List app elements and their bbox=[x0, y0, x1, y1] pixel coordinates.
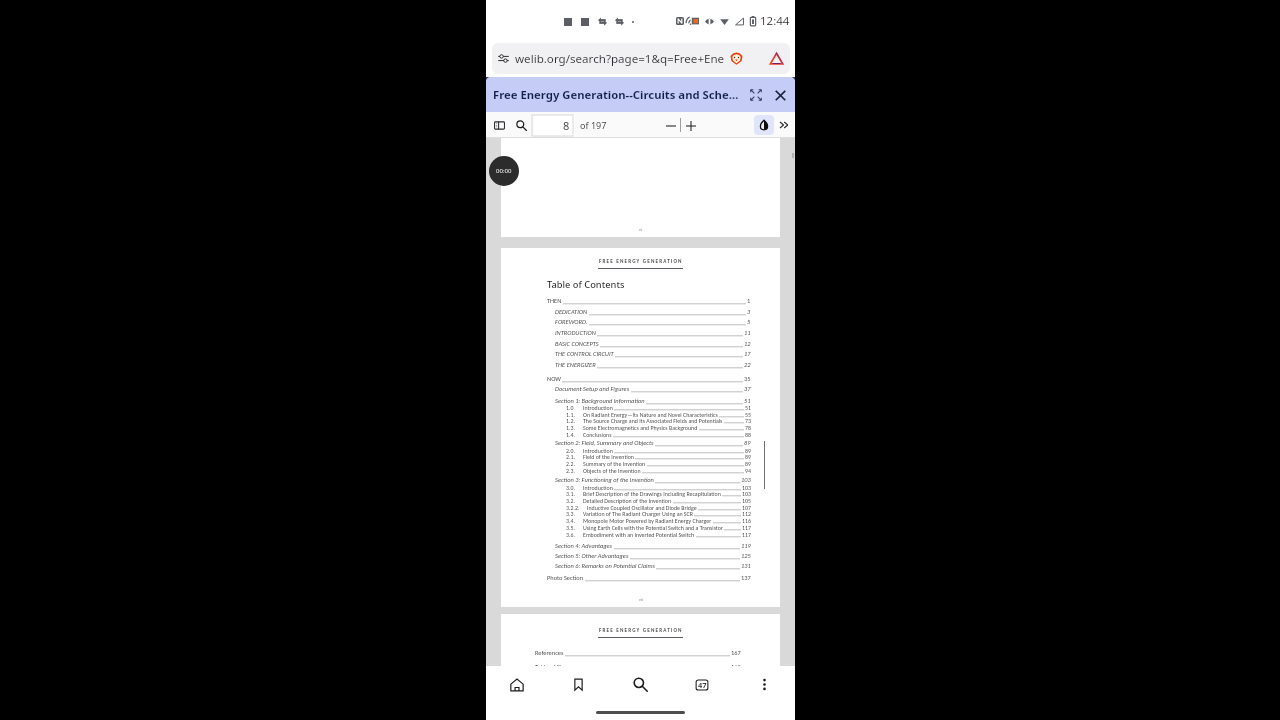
button[interactable]: Contrast bbox=[754, 115, 774, 135]
staticText: On Radiant Energy—Its Nature and Novel C… bbox=[583, 411, 718, 418]
staticText: 55 bbox=[745, 411, 751, 418]
staticText: 112 bbox=[742, 510, 751, 517]
staticText: 3 bbox=[747, 308, 751, 316]
staticText: Detailed Description of the Invention bbox=[583, 497, 672, 504]
staticText: 47 bbox=[698, 680, 707, 690]
button[interactable]: 8 bbox=[534, 115, 575, 136]
staticText: Summary of the Invention bbox=[583, 460, 646, 467]
staticText: 116 bbox=[742, 517, 751, 524]
staticText: Section 3: Functioning of the Invention bbox=[555, 476, 654, 484]
staticText: Monopole Motor Powered by Radiant Energy… bbox=[583, 517, 712, 524]
staticText: 137 bbox=[741, 574, 751, 582]
staticText: Document Setup and Figures bbox=[555, 385, 630, 393]
staticText: 51 bbox=[744, 397, 751, 405]
staticText: Variation of The Radiant Charger Using a… bbox=[583, 510, 693, 517]
button[interactable]: Full screen bbox=[745, 84, 767, 106]
staticText: Field of the Invention bbox=[583, 453, 634, 460]
staticText: 103 bbox=[742, 490, 751, 497]
staticText: FREE ENERGY GENERATION bbox=[599, 627, 683, 633]
staticText: 103 bbox=[742, 484, 751, 491]
staticText: 3.1. bbox=[566, 490, 575, 497]
staticText: THEN bbox=[547, 297, 562, 305]
staticText: 89 bbox=[745, 447, 751, 454]
staticText: 37 bbox=[744, 385, 751, 393]
staticText: NOW bbox=[547, 375, 561, 383]
staticText: Brief Description of the Drawings Includ… bbox=[583, 490, 721, 497]
staticText: BASIC CONCEPTS bbox=[555, 340, 599, 348]
staticText: 17 bbox=[744, 350, 751, 358]
staticText: welib.org/search?page=1&q=Free+Ene bbox=[515, 51, 725, 67]
staticText: FOREWORD. bbox=[555, 318, 588, 326]
staticText: Section 2: Field, Summary and Objects bbox=[555, 439, 654, 447]
staticText: 8 bbox=[563, 118, 570, 133]
staticText: 22 bbox=[744, 361, 751, 369]
staticText: 3.5. bbox=[566, 524, 575, 531]
staticText: Inductive Coupled Oscillator and Diode B… bbox=[583, 504, 697, 511]
staticText: 119 bbox=[741, 542, 751, 550]
staticText: 125 bbox=[741, 552, 751, 560]
staticText: The Source Charge and Its Associated Fie… bbox=[583, 417, 723, 424]
staticText: 167 bbox=[731, 649, 741, 657]
staticText: 1.4. bbox=[566, 431, 575, 438]
staticText: INTRODUCTION bbox=[555, 329, 596, 337]
staticText: 3.0. bbox=[566, 484, 575, 491]
button[interactable]: Zoom in bbox=[681, 116, 700, 135]
staticText: 3.3. bbox=[566, 510, 575, 517]
button[interactable]: Find in document bbox=[512, 116, 530, 134]
staticText: 1.1. bbox=[566, 411, 575, 418]
button[interactable]: Side panel bbox=[490, 116, 508, 134]
staticText: 169 bbox=[731, 663, 741, 671]
button[interactable]: Zoom out bbox=[661, 116, 680, 135]
staticText: 89 bbox=[744, 439, 751, 447]
staticText: Photo Section bbox=[547, 574, 584, 582]
staticText: 73 bbox=[745, 417, 751, 424]
button[interactable]: More options bbox=[733, 666, 795, 703]
staticText: 11 bbox=[744, 329, 751, 337]
staticText: 3.4. bbox=[566, 517, 575, 524]
staticText: vii bbox=[639, 597, 643, 602]
staticText: Introduction bbox=[583, 404, 613, 411]
button[interactable]: welib.org/search?page=1&q=Free+Ene bbox=[492, 43, 790, 74]
staticText: 117 bbox=[742, 531, 751, 538]
staticText: 2.3. bbox=[566, 467, 575, 474]
staticText: 78 bbox=[745, 424, 751, 431]
staticText: THE CONTROL CIRCUIT bbox=[555, 350, 614, 358]
staticText: Objects of the Invention bbox=[583, 467, 641, 474]
staticText: Conclusions bbox=[583, 431, 612, 438]
button[interactable]: Bookmarks bbox=[547, 666, 609, 703]
staticText: Section 1: Background Information bbox=[555, 397, 645, 405]
staticText: Section 6: Remarks on Potential Claims bbox=[555, 562, 655, 570]
staticText: 107 bbox=[742, 504, 751, 511]
staticText: Section 4: Advantages bbox=[555, 542, 613, 550]
staticText: 3.2.2. bbox=[566, 504, 580, 511]
staticText: THE ENERGIZER bbox=[555, 361, 596, 369]
button[interactable]: Tabs: 47 open bbox=[671, 666, 733, 703]
staticText: Introduction bbox=[583, 484, 613, 491]
staticText: 1.0 bbox=[566, 404, 574, 411]
staticText: 2.2. bbox=[566, 460, 575, 467]
button[interactable]: More tools bbox=[775, 116, 793, 134]
staticText: Some Electromagnetics and Physics Backgr… bbox=[583, 424, 698, 431]
staticText: 3.6. bbox=[566, 531, 575, 538]
staticText: 131 bbox=[741, 562, 751, 570]
staticText: 12 bbox=[744, 340, 751, 348]
staticText: Introduction bbox=[583, 447, 613, 454]
staticText: Embodiment with an Inverted Potential Sw… bbox=[583, 531, 695, 538]
staticText: of 197 bbox=[580, 119, 607, 131]
button[interactable]: Search bbox=[609, 666, 671, 703]
staticText: Table of Figures bbox=[535, 663, 576, 671]
staticText: 94 bbox=[745, 467, 751, 474]
staticText: Table of Contents bbox=[547, 278, 625, 291]
button[interactable]: 00:00 bbox=[489, 156, 519, 186]
staticText: 88 bbox=[745, 431, 751, 438]
staticText: 1.2. bbox=[566, 417, 575, 424]
staticText: FREE ENERGY GENERATION bbox=[599, 258, 683, 264]
staticText: 2.0. bbox=[566, 447, 575, 454]
button[interactable]: Close bbox=[769, 84, 791, 106]
staticText: Section 5: Other Advantages bbox=[555, 552, 629, 560]
staticText: Using Earth Cells with the Potential Swi… bbox=[583, 524, 723, 531]
staticText: 3.2. bbox=[566, 497, 575, 504]
staticText: 105 bbox=[742, 497, 751, 504]
staticText: Free Energy Generation--Circuits and Sch… bbox=[493, 87, 739, 102]
button[interactable]: Home bbox=[486, 666, 547, 703]
